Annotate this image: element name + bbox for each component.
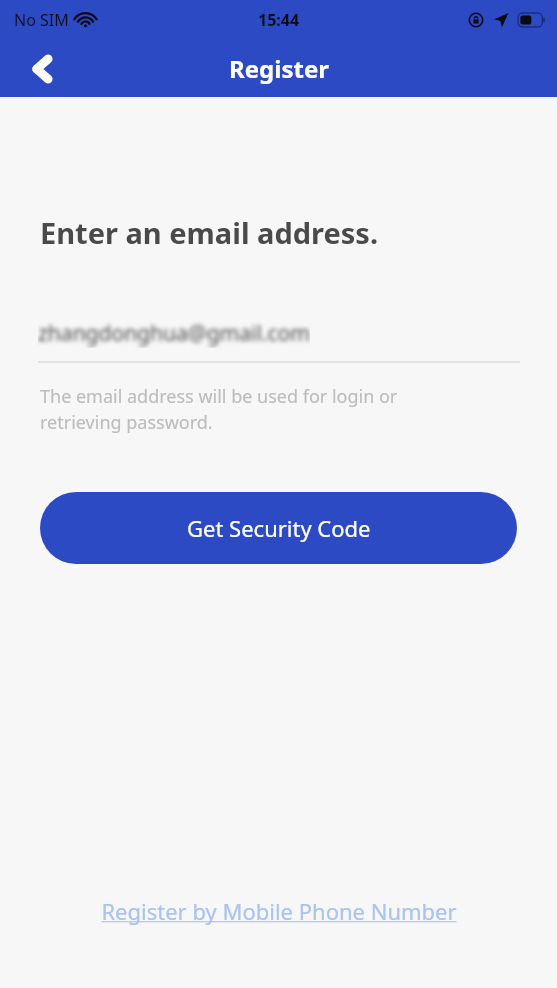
staticText: Enter an email address. bbox=[40, 213, 379, 252]
button[interactable]: zhangdonghua@gmail.com bbox=[38, 315, 519, 351]
button[interactable]: Get Security Code bbox=[40, 492, 517, 564]
staticText: No SIM bbox=[14, 9, 69, 31]
staticText: Register bbox=[229, 52, 329, 85]
staticText: zhangdonghua@gmail.com bbox=[38, 319, 310, 348]
button[interactable]: Back bbox=[18, 45, 66, 93]
button[interactable]: Register by Mobile Phone Number bbox=[0, 896, 557, 926]
staticText: Get Security Code bbox=[187, 513, 371, 543]
staticText: Register by Mobile Phone Number bbox=[101, 896, 457, 926]
staticText: The email address will be used for login… bbox=[40, 384, 398, 434]
staticText: 15:44 bbox=[258, 9, 300, 31]
